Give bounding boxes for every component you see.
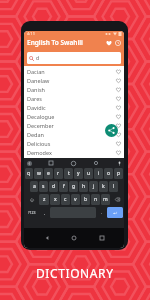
- staticText: k: [102, 183, 105, 190]
- button[interactable]: GIF: [70, 160, 76, 166]
- button[interactable]: Delicious: [24, 139, 124, 148]
- staticText: j: [93, 183, 95, 190]
- button[interactable]: i: [94, 168, 103, 179]
- button[interactable]: ?123: [25, 207, 39, 218]
- staticText: l: [113, 183, 115, 190]
- staticText: w: [37, 170, 41, 177]
- button[interactable]: Demodex: [24, 148, 124, 157]
- staticText: r: [57, 170, 60, 177]
- button[interactable]: j: [89, 181, 98, 192]
- staticText: d: [36, 55, 40, 62]
- button[interactable]: b: [81, 194, 90, 205]
- button[interactable]: Back: [42, 233, 52, 243]
- staticText: p: [117, 170, 121, 177]
- staticText: DICTIONARY: [36, 265, 114, 281]
- button[interactable]: a: [30, 181, 38, 192]
- staticText: q: [27, 170, 31, 177]
- button[interactable]: s: [39, 181, 48, 192]
- staticText: i: [98, 170, 100, 177]
- staticText: Danish: [27, 86, 45, 93]
- staticText: Dacian: [27, 68, 45, 75]
- staticText: Delicious: [27, 140, 51, 147]
- staticText: 4:11: [27, 31, 35, 36]
- staticText: .: [101, 210, 103, 215]
- staticText: u: [87, 170, 91, 177]
- staticText: n: [94, 196, 98, 203]
- staticText: English To Swahili: [27, 38, 83, 47]
- staticText: Danelaw: [27, 77, 50, 84]
- staticText: f: [63, 183, 65, 190]
- button[interactable]: y: [74, 168, 83, 179]
- staticText: Davidic: [27, 104, 46, 111]
- staticText: d: [52, 183, 56, 190]
- button[interactable]: u: [84, 168, 93, 179]
- button[interactable]: Voice input: [116, 160, 122, 166]
- staticText: b: [84, 196, 88, 203]
- staticText: Dedan: [27, 131, 44, 138]
- staticText: m: [103, 196, 108, 203]
- button[interactable]: n: [91, 194, 100, 205]
- button[interactable]: Dedan: [24, 130, 124, 139]
- button[interactable]: Comma: [40, 207, 49, 218]
- button[interactable]: t: [64, 168, 73, 179]
- button[interactable]: x: [50, 194, 60, 205]
- button[interactable]: Backspace: [111, 194, 123, 205]
- button[interactable]: p: [114, 168, 123, 179]
- staticText: Demodex: [27, 149, 52, 156]
- staticText: v: [74, 196, 77, 203]
- button[interactable]: Dares: [24, 94, 124, 103]
- button[interactable]: Home: [69, 233, 79, 243]
- button[interactable]: December: [24, 121, 124, 130]
- button[interactable]: q: [25, 168, 33, 179]
- button[interactable]: History: [113, 38, 122, 47]
- button[interactable]: Settings: [93, 160, 99, 166]
- staticText: o: [107, 170, 111, 177]
- staticText: g: [72, 183, 76, 190]
- staticText: a: [33, 183, 36, 190]
- staticText: t: [68, 170, 70, 177]
- button[interactable]: h: [79, 181, 88, 192]
- button[interactable]: v: [71, 194, 80, 205]
- staticText: e: [47, 170, 50, 177]
- button[interactable]: Dacian: [24, 67, 124, 76]
- button[interactable]: w: [34, 168, 43, 179]
- button[interactable]: r: [54, 168, 63, 179]
- button[interactable]: c: [61, 194, 70, 205]
- button[interactable]: z: [39, 194, 49, 205]
- button[interactable]: Enter: [107, 207, 123, 218]
- button[interactable]: d: [49, 181, 58, 192]
- button[interactable]: Shift: [25, 194, 38, 205]
- staticText: z: [43, 196, 46, 203]
- button[interactable]: o: [104, 168, 113, 179]
- button[interactable]: f: [59, 181, 68, 192]
- button[interactable]: d: [29, 52, 119, 64]
- button[interactable]: Davidic: [24, 103, 124, 112]
- button[interactable]: Danish: [24, 85, 124, 94]
- button[interactable]: Recents: [97, 233, 107, 243]
- button[interactable]: Back: [26, 160, 32, 166]
- button[interactable]: Decalogue: [24, 112, 124, 121]
- staticText: h: [82, 183, 86, 190]
- button[interactable]: e: [44, 168, 53, 179]
- button[interactable]: Favorites: [104, 38, 113, 47]
- button[interactable]: Period: [97, 207, 106, 218]
- staticText: Decalogue: [27, 113, 55, 120]
- button[interactable]: Share: [105, 124, 118, 137]
- button[interactable]: Danelaw: [24, 76, 124, 85]
- button[interactable]: Stickers: [48, 160, 54, 166]
- button[interactable]: g: [69, 181, 78, 192]
- staticText: y: [77, 170, 80, 177]
- button[interactable]: m: [101, 194, 110, 205]
- button[interactable]: l: [109, 181, 118, 192]
- staticText: s: [42, 183, 45, 190]
- staticText: ?123: [28, 210, 36, 215]
- staticText: c: [64, 196, 67, 203]
- staticText: ,: [44, 210, 46, 215]
- staticText: Dares: [27, 95, 42, 102]
- staticText: x: [54, 196, 57, 203]
- button[interactable]: k: [99, 181, 108, 192]
- staticText: December: [27, 122, 54, 129]
